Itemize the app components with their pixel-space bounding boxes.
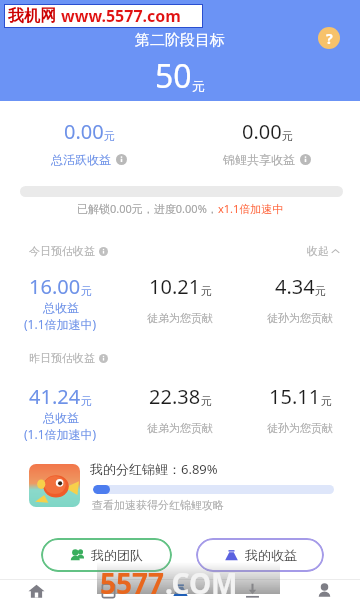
staticText: 徒弟为您贡献: [147, 421, 213, 435]
button[interactable]: Home: [0, 580, 72, 600]
staticText: 查看加速获得分红锦鲤攻略: [92, 498, 224, 512]
staticText: (1.1倍加速中): [24, 426, 97, 442]
staticText: ?: [326, 29, 333, 48]
staticText: 锦鲤共享收益: [223, 152, 295, 167]
button[interactable]: Koi: [29, 464, 80, 507]
staticText: 徒孙为您贡献: [267, 421, 333, 435]
button[interactable]: 收起: [307, 244, 340, 258]
staticText: 我的团队: [91, 547, 143, 563]
staticText: 元: [201, 394, 212, 408]
staticText: 41.24: [29, 383, 81, 410]
staticText: 元: [282, 129, 293, 143]
button[interactable]: Profile: [288, 580, 360, 600]
button[interactable]: Earnings: [144, 580, 216, 600]
staticText: 22.38: [149, 383, 201, 410]
staticText: 今日预估收益: [29, 244, 95, 258]
staticText: 4.34: [275, 273, 315, 300]
staticText: 我的分红锦鲤：6.89%: [90, 460, 218, 478]
staticText: 0.00: [242, 118, 282, 145]
button[interactable]: Downloads: [216, 580, 288, 600]
staticText: 元: [81, 394, 92, 408]
staticText: 元: [81, 284, 92, 298]
staticText: 我机网: [8, 6, 56, 26]
staticText: 5577: [100, 564, 165, 600]
staticText: 总收益: [43, 410, 79, 425]
staticText: 总活跃收益: [51, 152, 111, 167]
staticText: 元: [192, 78, 205, 94]
staticText: 元: [201, 284, 212, 298]
staticText: 0.00: [64, 118, 104, 145]
staticText: 16.00: [29, 273, 81, 300]
button[interactable]: 查看加速获得分红锦鲤攻略: [92, 498, 224, 512]
staticText: 元: [315, 284, 326, 298]
staticText: 已解锁0.00元，进度0.00%，: [77, 201, 218, 216]
staticText: 收起: [307, 244, 329, 258]
staticText: 15.11: [269, 383, 321, 410]
staticText: 元: [104, 129, 115, 143]
staticText: 徒弟为您贡献: [147, 311, 213, 325]
button[interactable]: 我的收益: [196, 538, 324, 572]
button[interactable]: Tasks: [72, 580, 144, 600]
button[interactable]: 我的团队: [41, 538, 172, 572]
staticText: www.5577.com: [61, 5, 181, 27]
staticText: 50: [155, 54, 192, 98]
button[interactable]: Help: [318, 27, 340, 49]
staticText: 10.21: [149, 273, 201, 300]
staticText: (1.1倍加速中): [24, 316, 97, 332]
staticText: 徒孙为您贡献: [267, 311, 333, 325]
staticText: 元: [321, 394, 332, 408]
staticText: 总收益: [43, 300, 79, 315]
staticText: x1.1倍加速中: [218, 201, 284, 216]
staticText: 昨日预估收益: [29, 351, 95, 365]
staticText: .COM: [165, 564, 238, 600]
staticText: 第二阶段目标: [135, 31, 225, 50]
staticText: 我的收益: [245, 547, 297, 563]
